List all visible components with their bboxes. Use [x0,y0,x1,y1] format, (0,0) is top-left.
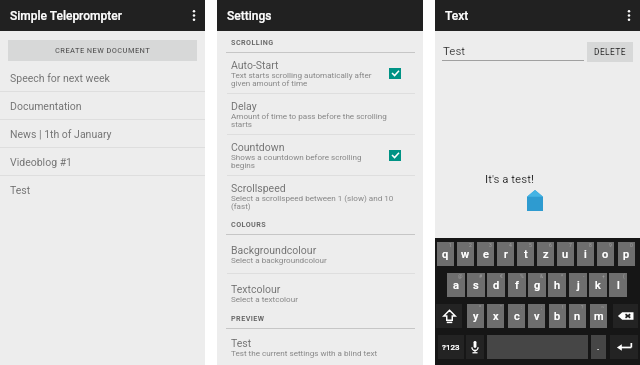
button[interactable]: Test [217,329,423,365]
staticText: DELETE [594,47,626,57]
button[interactable]: t [517,242,534,266]
button[interactable]: More options [618,0,640,31]
staticText: q [442,248,449,261]
button[interactable]: j [569,273,587,297]
staticText: e [483,248,489,261]
staticText: Countdown [231,141,285,153]
button[interactable]: Enter [610,335,638,359]
button[interactable]: c [508,304,525,328]
staticText: a [453,279,459,292]
staticText: 1 [449,242,452,248]
button[interactable]: Shift [436,304,462,328]
staticText: Textcolour [231,283,281,295]
button[interactable]: i [577,242,594,266]
button[interactable]: m [590,304,607,328]
button[interactable]: y [467,304,484,328]
button[interactable]: b [549,304,566,328]
button[interactable]: More options [183,0,205,31]
staticText: ! [562,304,564,310]
button[interactable]: f [508,273,526,297]
button[interactable]: Auto-Start [217,53,423,93]
staticText: ? [581,304,584,310]
staticText: b [554,310,561,323]
button[interactable]: k [589,273,607,297]
button[interactable]: Test [0,176,205,204]
staticText: Text starts scrolling automatically afte… [231,71,372,87]
button[interactable]: Videoblog #1 [0,148,205,176]
staticText: w [461,248,470,261]
button[interactable]: Delay [217,94,423,134]
staticText: u [562,248,569,261]
staticText: 7 [569,242,572,248]
staticText: Test [231,337,252,349]
staticText: CREATE NEW DOCUMENT [55,46,151,55]
staticText: # [479,273,483,279]
staticText: @ [458,273,463,279]
staticText: - [583,273,585,279]
staticText: PREVIEW [231,314,265,322]
staticText: : [521,304,523,310]
button[interactable]: Scrollspeed [217,176,423,216]
staticText: % [520,273,524,279]
staticText: + [602,273,605,279]
button[interactable]: ?123 [438,335,464,359]
button[interactable]: h [548,273,566,297]
button[interactable]: o [597,242,614,266]
button[interactable]: u [557,242,574,266]
staticText: j [577,279,580,292]
staticText: g [534,279,541,292]
button[interactable]: DELETE [587,42,633,62]
staticText: Amount of time to pass before the scroll… [231,112,387,128]
staticText: r [504,248,508,261]
button[interactable]: News | 1th of January [0,120,205,148]
staticText: ^ [479,304,482,310]
button[interactable]: Backgroundcolour [217,235,423,273]
staticText: p [623,248,630,261]
button[interactable]: Textcolour [217,274,423,312]
button[interactable]: Voice input [466,335,484,359]
staticText: Documentation [10,100,82,112]
staticText: Select a scrollspeed between 1 (slow) an… [231,194,394,210]
button[interactable]: l [609,273,627,297]
button[interactable]: r [497,242,514,266]
button[interactable]: Speech for next week [0,64,205,92]
button[interactable]: a [447,273,465,297]
staticText: ?123 [442,343,460,352]
button[interactable]: w [457,242,474,266]
button[interactable]: x [487,304,504,328]
button[interactable]: z [537,242,554,266]
button[interactable]: g [528,273,546,297]
staticText: 8 [589,242,592,248]
staticText: y [473,310,479,323]
button[interactable]: q [437,242,454,266]
button[interactable]: Backspace [613,304,638,328]
staticText: Test the current settings with a blind t… [231,349,378,357]
button[interactable]: s [467,273,485,297]
staticText: SCROLLING [231,38,274,46]
staticText: Text [445,9,469,23]
staticText: 0 [630,242,633,248]
button[interactable]: Countdown [217,135,423,175]
button[interactable]: . [591,335,606,359]
button[interactable]: CREATE NEW DOCUMENT [8,40,197,61]
button[interactable]: p [618,242,635,266]
staticText: c [514,310,520,323]
staticText: k [595,279,601,292]
button[interactable]: Documentation [0,92,205,120]
staticText: o [602,248,609,261]
button[interactable]: v [528,304,545,328]
staticText: i [584,248,587,261]
staticText: Simple Teleprompter [10,9,122,23]
button[interactable]: d [487,273,505,297]
staticText: m [594,310,604,323]
staticText: Test [443,44,466,57]
staticText: ~ [601,304,605,310]
staticText: Delay [231,100,257,112]
staticText: News | 1th of January [10,128,112,140]
button[interactable]: e [477,242,494,266]
staticText: z [543,248,549,261]
staticText: 5 [529,242,532,248]
staticText: d [493,279,500,292]
button[interactable]: n [569,304,586,328]
